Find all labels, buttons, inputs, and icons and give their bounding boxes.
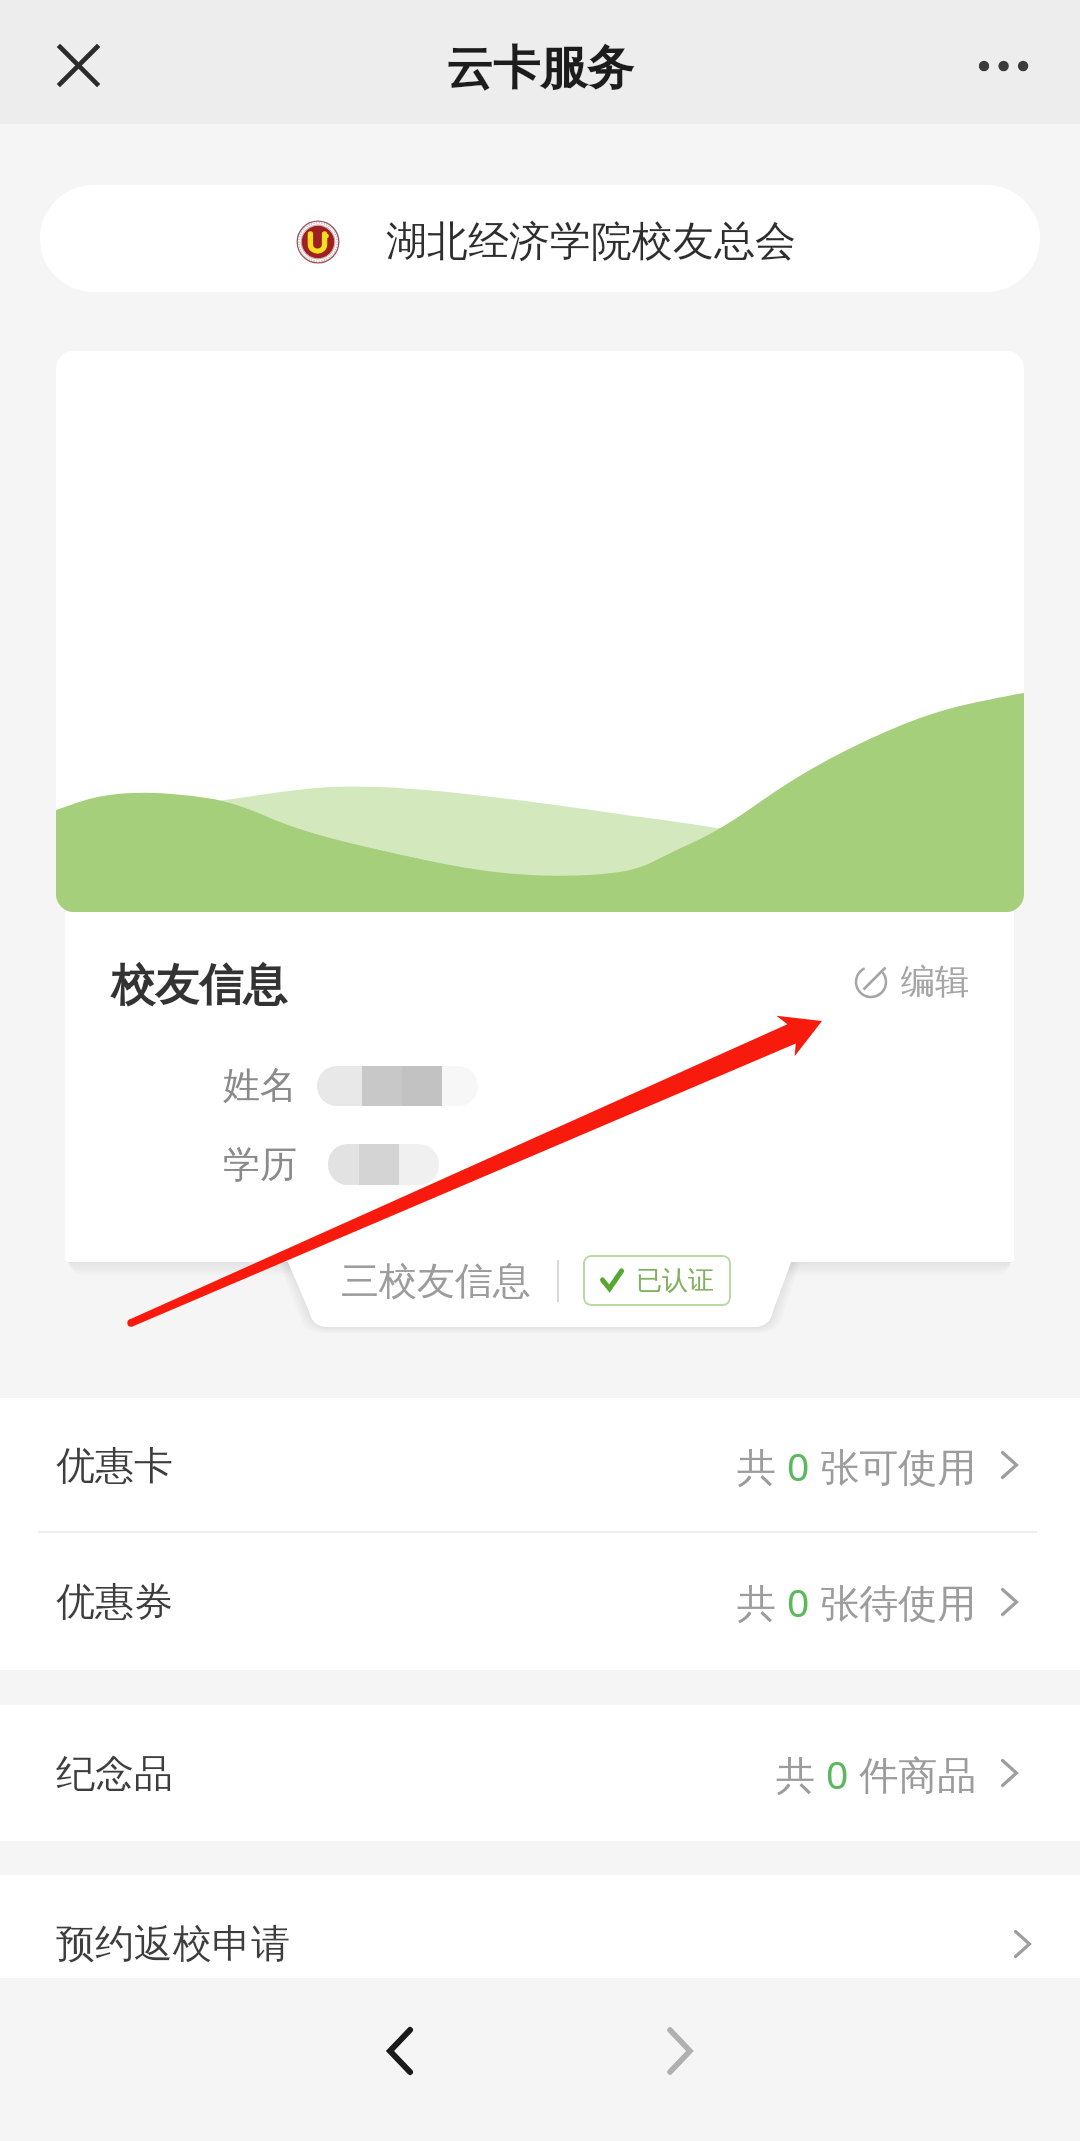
- button[interactable]: More options: [960, 21, 1048, 109]
- staticText: 编辑: [901, 960, 969, 1003]
- staticText: 优惠卡: [56, 1441, 173, 1490]
- staticText: 湖北经济学院校友总会: [386, 216, 796, 268]
- button[interactable]: 优惠卡: [0, 1398, 1080, 1532]
- staticText: 姓名: [223, 1062, 297, 1109]
- button[interactable]: 优惠券: [0, 1533, 1080, 1670]
- button[interactable]: 纪念品: [0, 1705, 1080, 1841]
- staticText: 0: [787, 1575, 810, 1628]
- staticText: 三校友信息: [341, 1257, 531, 1305]
- button[interactable]: 三校友信息: [283, 1248, 788, 1313]
- staticText: 优惠券: [56, 1577, 173, 1626]
- staticText: 共: [737, 1575, 787, 1628]
- staticText: 校友信息: [111, 958, 287, 1013]
- staticText: 预约返校申请: [56, 1919, 290, 1968]
- button[interactable]: Close: [34, 21, 122, 109]
- staticText: 已认证: [636, 1264, 714, 1297]
- staticText: 张待使用: [810, 1575, 977, 1628]
- staticText: 共: [737, 1439, 787, 1492]
- staticText: 纪念品: [56, 1749, 173, 1798]
- button[interactable]: 湖北经济学院校友总会: [40, 185, 1040, 292]
- button[interactable]: Forward: [620, 1991, 740, 2111]
- button[interactable]: Back: [340, 1991, 460, 2111]
- staticText: 件商品: [849, 1747, 977, 1800]
- staticText: 0: [787, 1439, 810, 1492]
- button[interactable]: 预约返校申请: [0, 1875, 1080, 1978]
- staticText: 学历: [223, 1141, 297, 1188]
- staticText: 云卡服务: [446, 39, 634, 98]
- staticText: 0: [826, 1747, 849, 1800]
- staticText: 共: [776, 1747, 826, 1800]
- button[interactable]: 编辑: [846, 956, 977, 1007]
- staticText: 张可使用: [810, 1439, 977, 1492]
